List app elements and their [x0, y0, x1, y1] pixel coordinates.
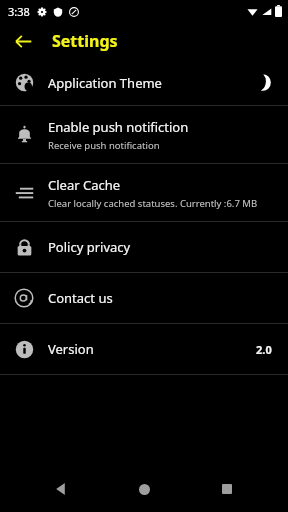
staticText: 2.0 [256, 342, 272, 357]
button[interactable]: Recents [205, 467, 249, 511]
staticText: Enable push notifiction [48, 118, 189, 136]
staticText: Policy privacy [48, 238, 131, 256]
staticText: Contact us [48, 289, 113, 307]
button[interactable]: Application Theme [0, 60, 288, 105]
staticText: Clear locally cached statuses. Currently… [48, 197, 258, 210]
button[interactable]: Home [122, 467, 166, 511]
staticText: Clear Cache [48, 176, 121, 194]
button[interactable]: Contact us [0, 273, 288, 323]
staticText: Version [48, 340, 94, 358]
button[interactable]: Back [39, 467, 83, 511]
button[interactable]: Clear Cache [0, 164, 288, 221]
button[interactable]: Back [6, 24, 40, 58]
staticText: 3:38 [8, 4, 30, 19]
staticText: Application Theme [48, 74, 162, 92]
staticText: Settings [52, 30, 118, 52]
button[interactable]: Policy privacy [0, 222, 288, 272]
button[interactable]: Enable push notifiction [0, 106, 288, 163]
staticText: Receive push notification [48, 139, 160, 152]
button[interactable]: Version [0, 324, 288, 374]
